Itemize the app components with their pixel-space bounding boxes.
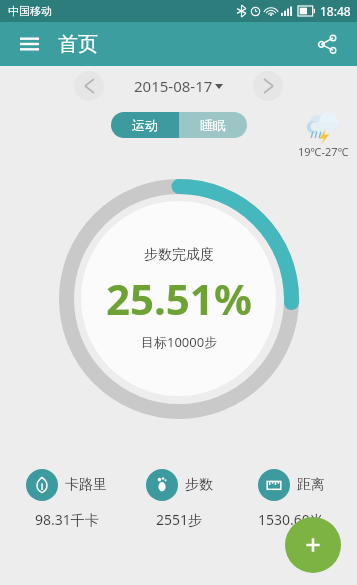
button[interactable]: Next day: [253, 71, 283, 101]
button[interactable]: 步数: [123, 469, 235, 529]
button[interactable]: Menu: [14, 29, 44, 59]
staticText: 2015-08-17: [134, 76, 213, 96]
staticText: 步数: [185, 476, 213, 494]
button[interactable]: Share: [311, 28, 343, 60]
staticText: 距离: [297, 476, 325, 494]
button[interactable]: 距离: [235, 469, 347, 529]
staticText: 25.51%: [106, 270, 252, 327]
button[interactable]: 睡眠: [179, 112, 247, 138]
staticText: 18:48: [320, 3, 351, 19]
button[interactable]: 运动: [111, 112, 179, 138]
button[interactable]: 卡路里: [10, 469, 123, 529]
button[interactable]: Add: [285, 517, 341, 573]
staticText: 卡路里: [65, 476, 107, 494]
staticText: 98.31千卡: [35, 510, 99, 529]
staticText: 19℃-27℃: [298, 144, 349, 159]
staticText: 中国移动: [8, 4, 52, 18]
staticText: 目标10000步: [141, 333, 218, 351]
staticText: 步数完成度: [144, 246, 214, 264]
staticText: 2551步: [156, 510, 203, 529]
staticText: 睡眠: [200, 117, 226, 133]
staticText: 首页: [58, 32, 98, 57]
staticText: 1530.60米: [258, 510, 324, 529]
button[interactable]: Previous day: [74, 71, 104, 101]
staticText: 运动: [132, 117, 158, 133]
